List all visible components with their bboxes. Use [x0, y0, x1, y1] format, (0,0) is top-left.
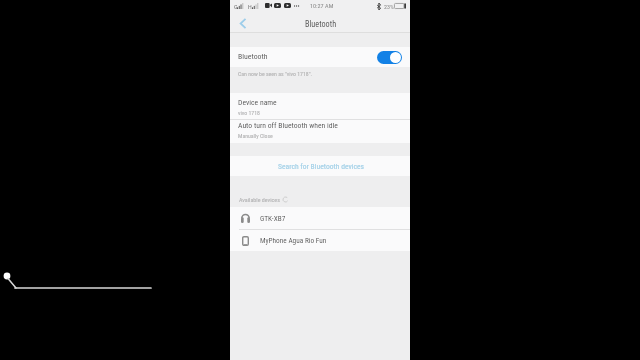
staticText: Auto turn off Bluetooth when idle: [238, 121, 338, 130]
staticText: Manually Close: [238, 133, 273, 140]
button[interactable]: Device name: [230, 93, 410, 119]
staticText: Bluetooth: [238, 52, 268, 61]
staticText: vivo 1718: [238, 110, 260, 117]
staticText: GTK-XB7: [260, 214, 286, 223]
staticText: 23%: [384, 3, 394, 10]
staticText: H: [248, 3, 252, 10]
button[interactable]: Search for Bluetooth devices: [230, 156, 410, 176]
staticText: Bluetooth: [305, 19, 337, 29]
button[interactable]: Bluetooth on: [377, 51, 402, 64]
button[interactable]: Bluetooth: [230, 47, 410, 67]
staticText: Available devices: [239, 196, 280, 203]
staticText: Device name: [238, 98, 277, 107]
button[interactable]: Back: [234, 13, 252, 32]
staticText: MyPhone Agua Rio Fun: [260, 236, 327, 245]
staticText: Search for Bluetooth devices: [278, 162, 364, 171]
staticText: Can now be seen as "vivo 1718".: [238, 71, 313, 78]
button[interactable]: Auto turn off Bluetooth when idle: [230, 119, 410, 143]
staticText: 10:27 AM: [310, 2, 334, 9]
button[interactable]: GTK-XB7: [230, 207, 410, 229]
button[interactable]: MyPhone Agua Rio Fun: [230, 230, 410, 251]
staticText: G: [234, 3, 238, 10]
